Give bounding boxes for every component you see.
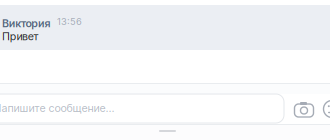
button[interactable]: Напишите сообщение... — [0, 94, 284, 123]
staticText: Привет — [2, 30, 38, 43]
staticText: 13:56 — [57, 16, 82, 27]
button[interactable]: Stickers — [319, 96, 330, 122]
staticText: Виктория — [2, 17, 51, 30]
button[interactable]: Camera — [291, 96, 317, 122]
staticText: Напишите сообщение... — [0, 101, 114, 114]
